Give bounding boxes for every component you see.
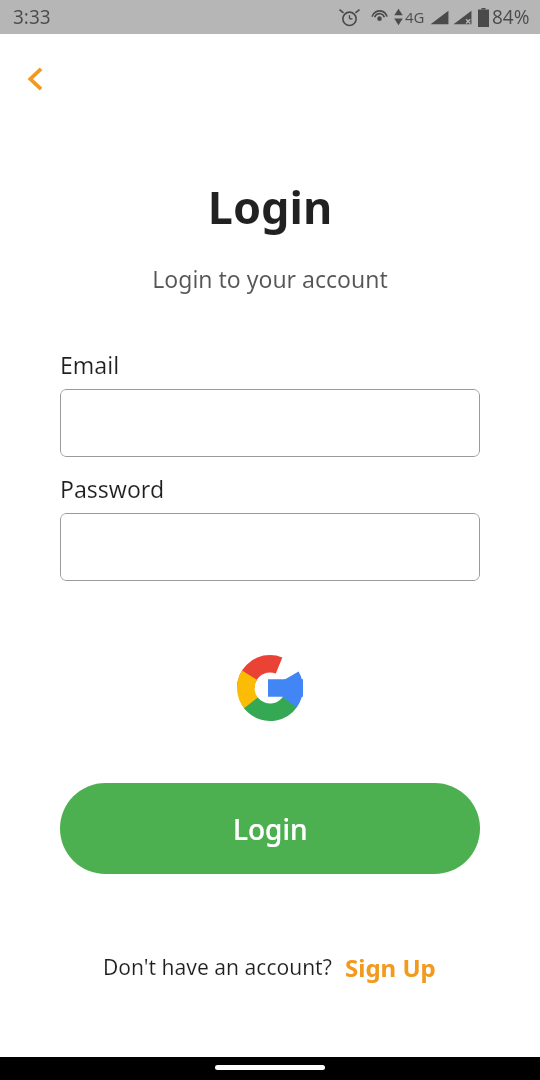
- staticText: 84%: [492, 4, 530, 30]
- button[interactable]: Back: [7, 51, 63, 107]
- staticText: Login: [0, 176, 540, 237]
- staticText: 4G: [405, 7, 425, 27]
- staticText: Sign Up: [345, 951, 436, 984]
- button[interactable]: Login: [60, 783, 480, 874]
- button[interactable]: Sign in with Google: [235, 653, 305, 723]
- staticText: Login to your account: [0, 263, 540, 294]
- staticText: Email: [60, 349, 120, 380]
- button[interactable]: Email input: [60, 389, 480, 457]
- staticText: Password: [60, 473, 165, 504]
- staticText: Don't have an account?: [103, 953, 332, 982]
- button[interactable]: Sign Up: [343, 949, 438, 986]
- button[interactable]: Password input: [60, 513, 480, 581]
- staticText: Login: [233, 810, 308, 848]
- staticText: 3:33: [13, 4, 51, 30]
